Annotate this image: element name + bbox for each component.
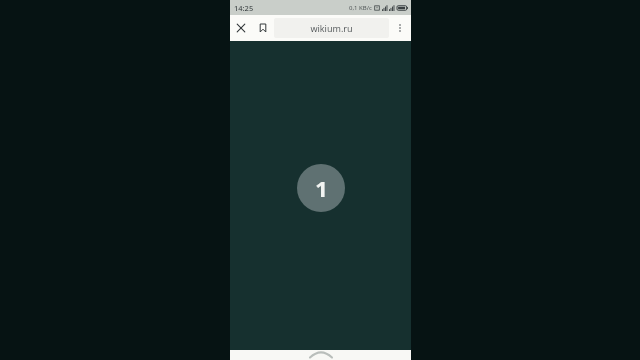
staticText: 14:25 xyxy=(234,3,254,13)
button[interactable]: 1 xyxy=(297,164,345,212)
button[interactable]: Bookmark xyxy=(252,17,274,39)
button[interactable]: More options xyxy=(389,17,411,39)
button[interactable]: wikium.ru xyxy=(274,18,389,38)
staticText: 1 xyxy=(315,173,328,203)
button[interactable]: Close xyxy=(230,17,252,39)
staticText: 0,1 KB/c xyxy=(349,4,372,12)
staticText: wikium.ru xyxy=(310,22,353,34)
